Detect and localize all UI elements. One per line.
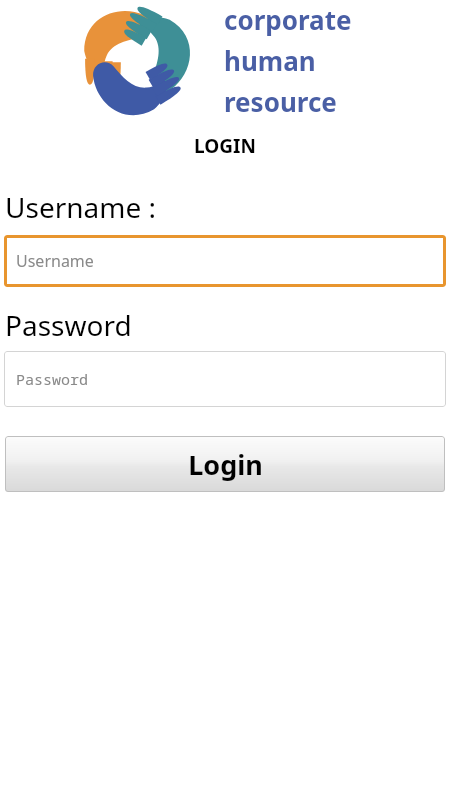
staticText: LOGIN	[194, 133, 256, 159]
staticText: Username :	[5, 188, 157, 226]
staticText: resource	[224, 84, 337, 119]
staticText: Login	[188, 446, 263, 483]
staticText: human	[224, 43, 316, 78]
staticText: Password	[16, 369, 89, 389]
button[interactable]: Login	[5, 436, 445, 492]
staticText: Password	[5, 306, 132, 344]
button[interactable]: Username	[4, 235, 446, 287]
staticText: corporate	[224, 2, 352, 37]
button[interactable]: Password	[4, 351, 446, 407]
staticText: Username	[16, 250, 94, 272]
